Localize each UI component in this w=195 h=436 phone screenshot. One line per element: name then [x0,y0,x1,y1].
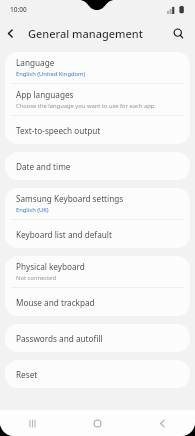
staticText: App languages [16,89,74,100]
button[interactable]: Text-to-speech output [5,116,190,144]
staticText: Language [16,57,55,68]
button[interactable]: Language [5,52,190,83]
button[interactable]: App languages [5,84,190,115]
button[interactable]: Home [65,410,130,436]
button[interactable]: Recents [0,410,65,436]
staticText: Samsung Keyboard settings [16,193,124,204]
staticText: English (United Kingdom) [16,70,86,78]
button[interactable]: Back [130,410,195,436]
button[interactable]: Search [169,24,187,42]
staticText: Passwords and autofill [16,333,103,344]
staticText: Physical keyboard [16,261,85,272]
staticText: Text-to-speech output [16,125,101,136]
staticText: 10:00 [10,5,27,14]
staticText: Not connected [16,274,56,282]
button[interactable]: Mouse and trackpad [5,288,190,316]
button[interactable]: Date and time [5,152,190,180]
button[interactable]: Reset [5,360,190,388]
staticText: Date and time [16,161,71,172]
button[interactable]: Keyboard list and default [5,220,190,248]
staticText: English (UK) [16,206,49,214]
staticText: Choose the language you want to use for … [16,102,156,110]
button[interactable]: Physical keyboard [5,256,190,287]
button[interactable]: Back [0,23,20,43]
button[interactable]: Samsung Keyboard settings [5,188,190,219]
staticText: Reset [16,369,38,380]
staticText: General management [28,26,143,41]
staticText: Mouse and trackpad [16,297,95,308]
staticText: Keyboard list and default [16,229,112,240]
button[interactable]: Passwords and autofill [5,324,190,352]
